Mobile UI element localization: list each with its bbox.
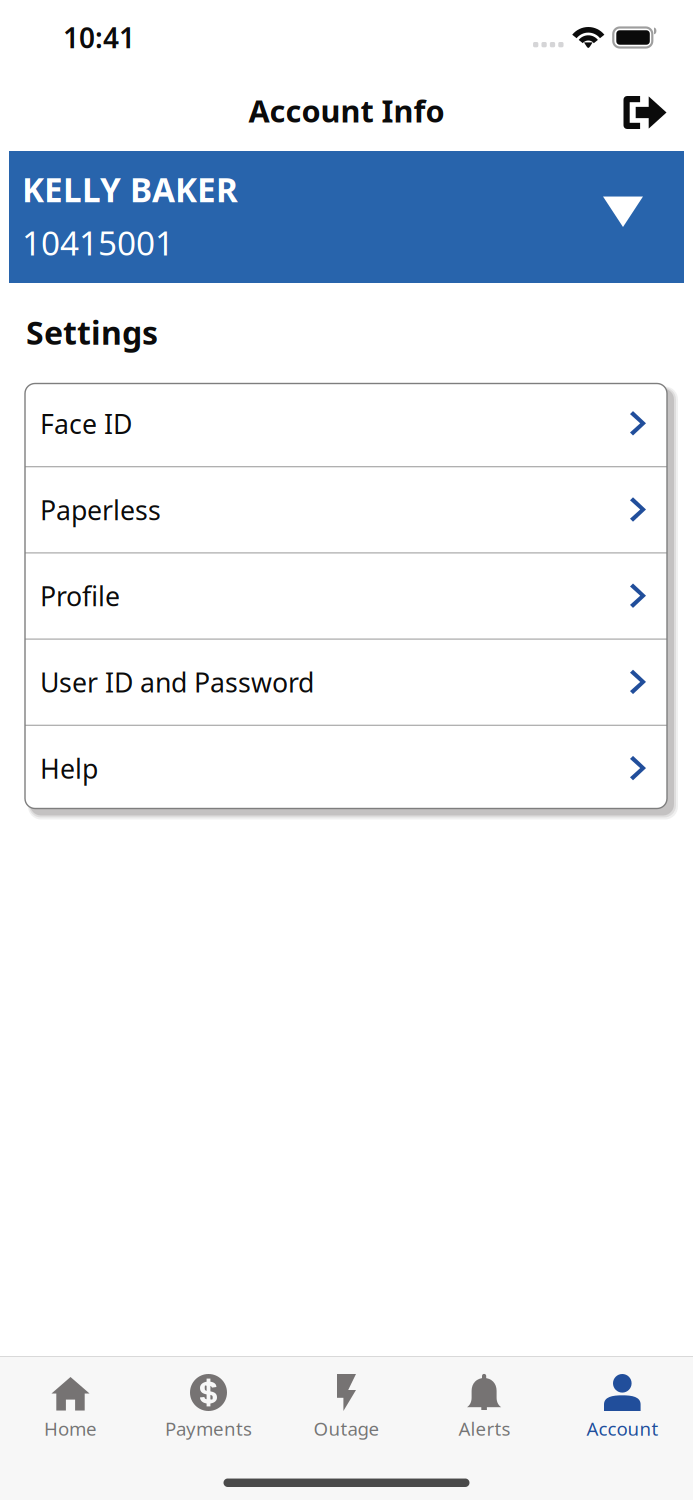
button[interactable]: User ID and Password: [25, 640, 667, 725]
staticText: User ID and Password: [40, 664, 314, 700]
staticText: Alerts: [458, 1416, 510, 1441]
staticText: Face ID: [40, 406, 132, 441]
staticText: 10:41: [63, 19, 135, 56]
button[interactable]: Help: [25, 726, 667, 811]
button[interactable]: Sign out: [614, 82, 676, 142]
button[interactable]: Alerts: [415, 1357, 553, 1445]
staticText: Settings: [26, 311, 158, 353]
button[interactable]: Account: [553, 1357, 691, 1445]
staticText: Account Info: [248, 90, 444, 131]
staticText: Paperless: [40, 492, 161, 527]
button[interactable]: Profile: [25, 553, 667, 638]
button[interactable]: Outage: [277, 1357, 415, 1445]
button[interactable]: KELLY BAKER: [9, 151, 684, 283]
staticText: 10415001: [22, 220, 174, 265]
staticText: Home: [44, 1416, 97, 1441]
button[interactable]: Payments: [139, 1357, 277, 1445]
staticText: Payments: [165, 1416, 252, 1441]
staticText: KELLY BAKER: [22, 167, 238, 211]
button[interactable]: Face ID: [25, 381, 667, 466]
staticText: Help: [40, 751, 98, 786]
staticText: Account: [586, 1416, 658, 1441]
staticText: Outage: [313, 1416, 379, 1441]
staticText: Profile: [40, 578, 120, 614]
button[interactable]: Paperless: [25, 467, 667, 552]
button[interactable]: Home: [1, 1357, 139, 1445]
